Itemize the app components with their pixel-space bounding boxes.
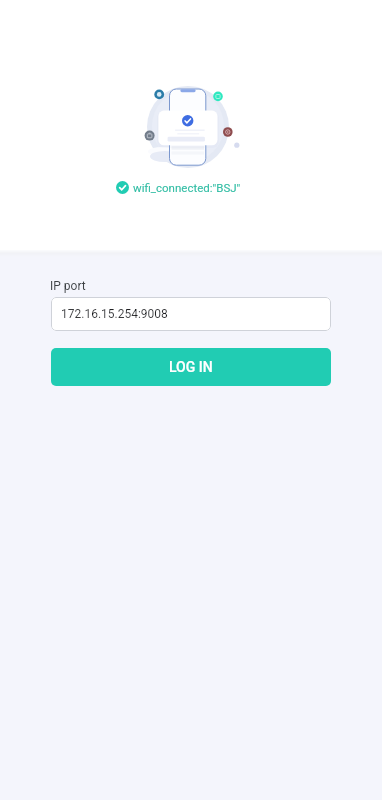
other: Connected	[116, 181, 129, 194]
staticText: LOG IN	[169, 359, 213, 375]
staticText: wifi_connected:"BSJ"	[133, 181, 241, 194]
other: Device connection illustration	[0, 0, 382, 800]
staticText: 172.16.15.254:9008	[61, 307, 168, 321]
staticText: IP port	[50, 279, 86, 293]
button[interactable]: LOG IN	[51, 348, 331, 386]
button[interactable]: 172.16.15.254:9008	[51, 297, 331, 331]
button[interactable]: Connected	[116, 181, 241, 194]
